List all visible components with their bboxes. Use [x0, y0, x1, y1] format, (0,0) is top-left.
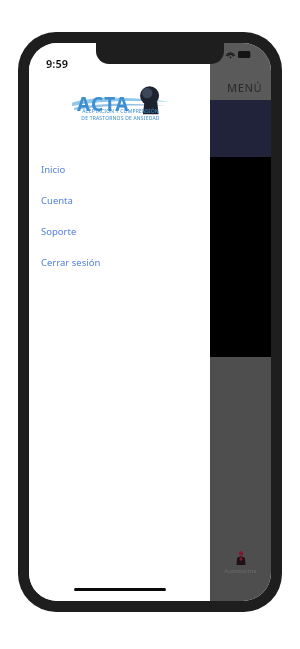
- staticText: Soporte: [41, 225, 77, 238]
- staticText: DE TRASTORNOS DE ANSIEDAD: [81, 115, 160, 122]
- staticText: Inicio: [41, 163, 66, 176]
- staticText: ACEPTACIÓN Y COMPRENSIÓN: [82, 108, 159, 115]
- button[interactable]: Cuenta: [29, 185, 210, 216]
- button[interactable]: Inicio: [29, 154, 210, 185]
- button[interactable]: Autoestima: [224, 551, 257, 575]
- staticText: Autoestima: [224, 567, 257, 575]
- staticText: Cuenta: [41, 194, 73, 207]
- staticText: 9:59: [46, 56, 68, 71]
- button[interactable]: Cerrar sesión: [29, 247, 210, 278]
- button[interactable]: MENÚ: [227, 80, 263, 95]
- staticText: Cerrar sesión: [41, 256, 101, 269]
- staticText: ACTA: [77, 91, 130, 117]
- button[interactable]: Soporte: [29, 216, 210, 247]
